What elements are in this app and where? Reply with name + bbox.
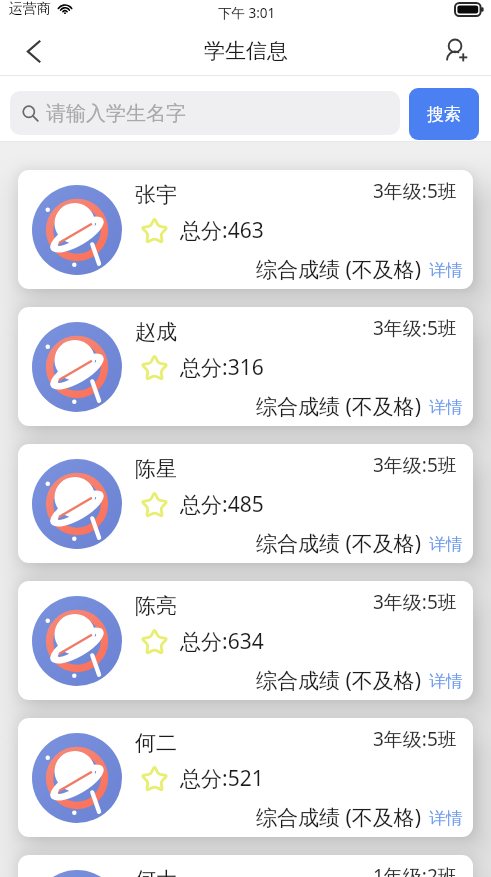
staticText: 总分:634 [180, 627, 264, 656]
staticText: 详情 [429, 260, 463, 281]
button[interactable]: 搜索 [409, 88, 479, 140]
staticText: 综合成绩 (不及格) [256, 666, 422, 695]
button[interactable]: 请输入学生名字 [10, 91, 400, 135]
staticText: 下午 3:01 [218, 4, 276, 22]
staticText: 总分:463 [180, 216, 264, 245]
button[interactable]: 3年级:5班 [18, 581, 473, 700]
staticText: 总分:485 [180, 490, 264, 519]
staticText: 张宇 [135, 182, 177, 208]
staticText: 总分:316 [180, 353, 264, 382]
staticText: 3年级:5班 [373, 452, 457, 478]
staticText: 搜索 [427, 104, 461, 125]
staticText: 赵成 [135, 319, 177, 345]
staticText: 综合成绩 (不及格) [256, 529, 422, 558]
staticText: 陈亮 [135, 593, 177, 619]
staticText: 3年级:5班 [373, 589, 457, 615]
button[interactable]: 3年级:5班 [18, 444, 473, 563]
staticText: 详情 [429, 671, 463, 692]
button[interactable]: 详情 [429, 671, 463, 692]
staticText: 总分:521 [180, 764, 264, 793]
staticText: 学生信息 [204, 38, 288, 64]
staticText: 综合成绩 (不及格) [256, 255, 422, 284]
staticText: 综合成绩 (不及格) [256, 392, 422, 421]
staticText: 详情 [429, 534, 463, 555]
staticText: 3年级:5班 [373, 178, 457, 204]
staticText: 详情 [429, 397, 463, 418]
button[interactable]: 详情 [429, 534, 463, 555]
button[interactable]: 3年级:5班 [18, 718, 473, 837]
button[interactable]: Back [13, 31, 53, 71]
button[interactable]: 详情 [429, 397, 463, 418]
button[interactable]: 3年级:5班 [18, 307, 473, 426]
staticText: 详情 [429, 808, 463, 829]
button[interactable]: 详情 [429, 808, 463, 829]
button[interactable]: 3年级:5班 [18, 170, 473, 289]
staticText: 请输入学生名字 [46, 101, 186, 126]
staticText: 何大 [135, 867, 177, 877]
staticText: 陈星 [135, 456, 177, 482]
staticText: 3年级:5班 [373, 726, 457, 752]
staticText: 运营商 [9, 0, 51, 18]
staticText: 1年级:2班 [373, 863, 457, 877]
staticText: 3年级:5班 [373, 315, 457, 341]
staticText: 何二 [135, 730, 177, 756]
button[interactable]: Add student [437, 31, 477, 71]
button[interactable]: 详情 [429, 260, 463, 281]
staticText: 综合成绩 (不及格) [256, 803, 422, 832]
button[interactable]: 1年级:2班 [18, 855, 473, 877]
